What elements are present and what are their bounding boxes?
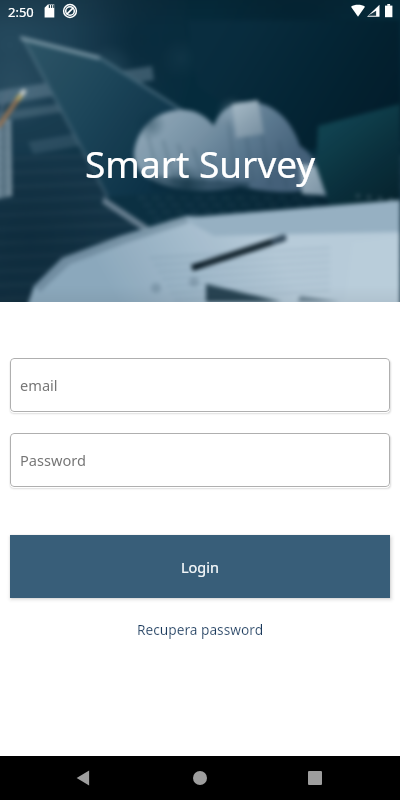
staticText: 2:50 — [8, 3, 34, 21]
button[interactable]: email — [10, 358, 390, 412]
button[interactable]: Recupera password — [129, 615, 272, 644]
staticText: Smart Survey — [85, 138, 316, 188]
staticText: email — [20, 375, 58, 395]
button[interactable]: Home — [176, 756, 224, 800]
button[interactable]: Password — [10, 433, 390, 487]
button[interactable]: Login — [10, 535, 390, 598]
staticText: Password — [20, 450, 87, 470]
button[interactable]: Back — [60, 756, 108, 800]
staticText: Login — [181, 557, 219, 577]
button[interactable]: Recent apps — [291, 756, 339, 800]
